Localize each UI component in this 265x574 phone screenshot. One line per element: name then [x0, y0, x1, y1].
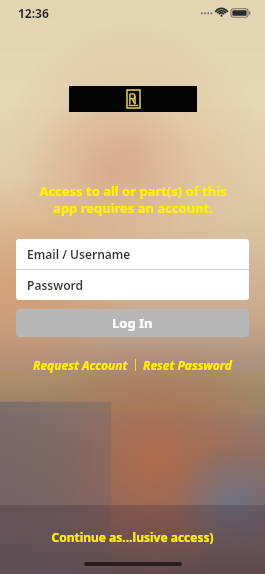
button[interactable]: Request Account: [31, 355, 130, 375]
staticText: Request Account: [33, 357, 128, 373]
staticText: 12:36: [18, 5, 49, 21]
staticText: Log In: [112, 314, 153, 332]
button[interactable]: Email / Username: [16, 239, 249, 269]
button[interactable]: Continue as…lusive access): [43, 526, 222, 548]
button[interactable]: Log In: [16, 309, 249, 337]
button[interactable]: Password: [16, 270, 249, 300]
staticText: Continue as…lusive access): [51, 529, 214, 545]
staticText: Email / Username: [27, 246, 131, 262]
other: Home indicator: [84, 562, 182, 566]
staticText: Password: [27, 277, 84, 293]
staticText: Access to all or part(s) of this app req…: [39, 182, 227, 217]
button[interactable]: Reset Password: [141, 355, 234, 375]
staticText: Reset Password: [143, 357, 232, 373]
